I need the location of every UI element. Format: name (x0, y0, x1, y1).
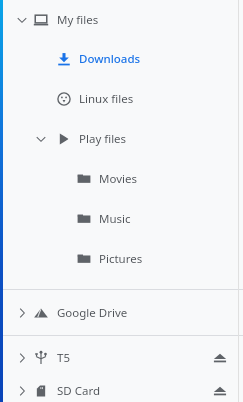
button[interactable]: Expand (0, 298, 243, 328)
staticText: Music (99, 211, 131, 227)
button[interactable]: Collapse (15, 13, 29, 27)
button[interactable]: Movies (0, 166, 243, 192)
button[interactable]: Linux files (0, 86, 243, 112)
button[interactable]: Expand (15, 384, 29, 398)
button[interactable]: Expand (15, 306, 29, 320)
button[interactable]: Expand (0, 380, 243, 402)
button[interactable]: Eject T5 (212, 350, 228, 366)
button[interactable]: Eject SD Card (212, 383, 228, 399)
button[interactable]: Expand (0, 343, 243, 373)
button[interactable]: Pictures (0, 246, 243, 272)
button[interactable]: Expand (15, 351, 29, 365)
staticText: Google Drive (57, 305, 128, 321)
staticText: Linux files (79, 91, 134, 107)
staticText: My files (57, 12, 99, 28)
button[interactable]: Collapse (0, 126, 243, 152)
staticText: SD Card (57, 383, 101, 399)
staticText: Downloads (79, 51, 141, 67)
staticText: Movies (99, 171, 137, 187)
button[interactable]: Downloads (0, 46, 243, 72)
button[interactable]: Collapse (0, 5, 243, 34)
staticText: Pictures (99, 251, 143, 267)
staticText: T5 (57, 350, 70, 366)
staticText: Play files (79, 131, 127, 147)
button[interactable]: Collapse (34, 132, 48, 146)
button[interactable]: Music (0, 206, 243, 232)
